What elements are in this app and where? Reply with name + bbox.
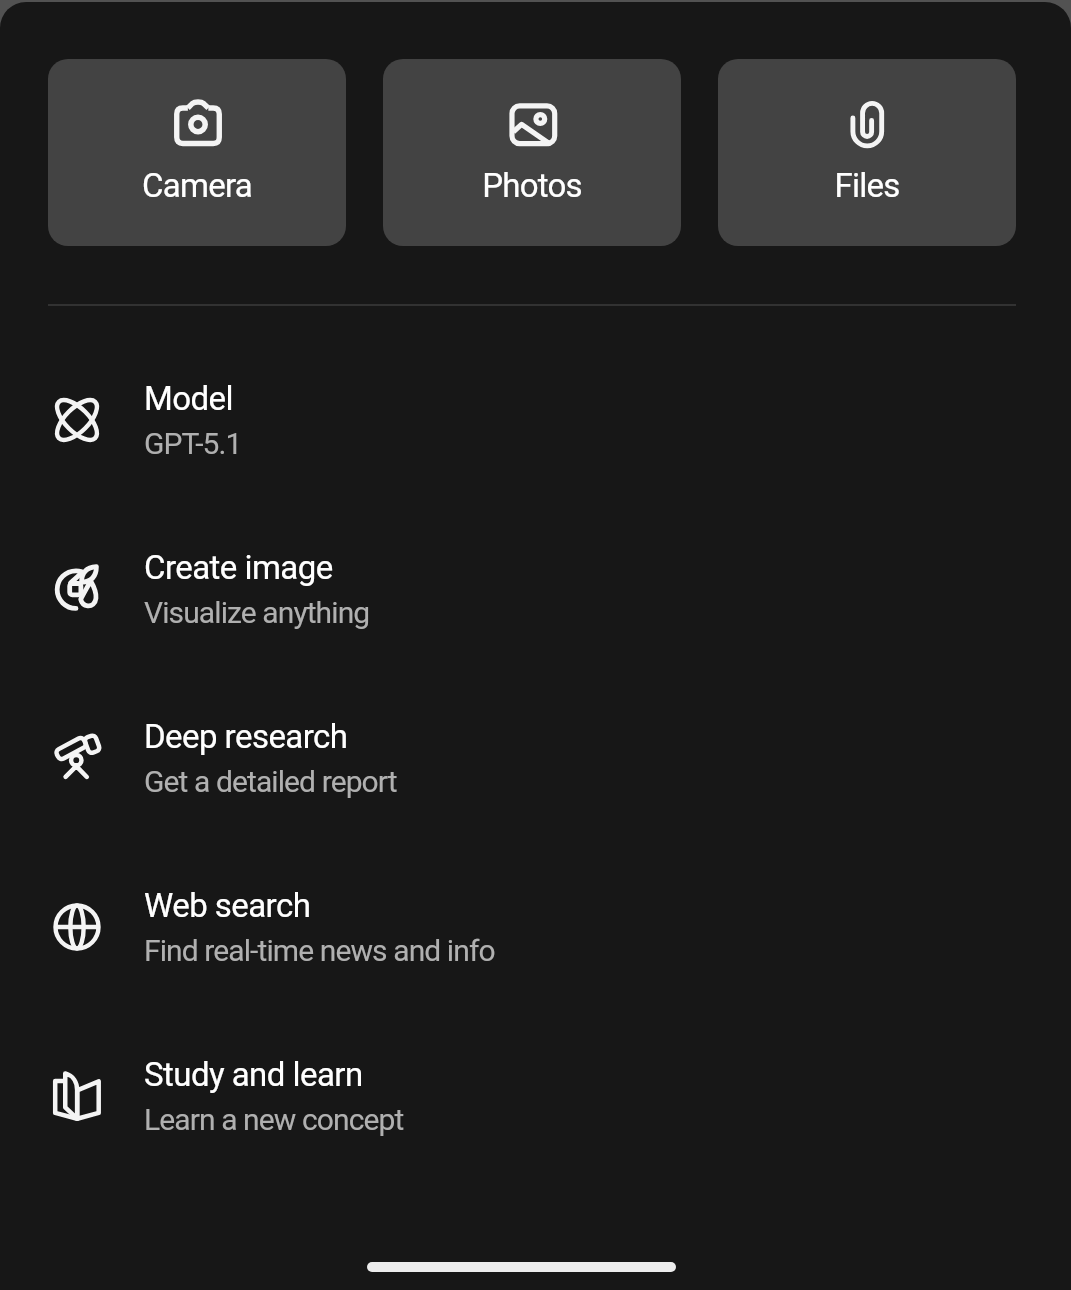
staticText: Web search <box>144 886 311 925</box>
staticText: Get a detailed report <box>144 764 397 799</box>
button[interactable]: Model <box>0 335 1071 504</box>
button[interactable]: Web search <box>0 842 1071 1011</box>
staticText: Learn a new concept <box>144 1102 404 1137</box>
other: Camera <box>173 99 221 147</box>
staticText: Model <box>144 379 234 418</box>
button[interactable]: Camera <box>48 59 346 246</box>
other: Files <box>843 99 891 147</box>
staticText: Create image <box>144 548 333 587</box>
button[interactable]: Deep research <box>0 673 1071 842</box>
other: Photos <box>508 99 556 147</box>
button[interactable]: Create image <box>0 504 1071 673</box>
staticText: Files <box>834 166 900 205</box>
staticText: Deep research <box>144 717 348 756</box>
staticText: Study and learn <box>144 1055 363 1094</box>
staticText: Visualize anything <box>144 595 370 630</box>
button[interactable]: Study and learn <box>0 1011 1071 1180</box>
staticText: Camera <box>142 166 252 205</box>
staticText: GPT-5.1 <box>144 426 242 461</box>
button[interactable]: Photos <box>383 59 681 246</box>
staticText: Find real-time news and info <box>144 933 495 968</box>
button[interactable]: Files <box>718 59 1016 246</box>
staticText: Photos <box>482 166 582 205</box>
